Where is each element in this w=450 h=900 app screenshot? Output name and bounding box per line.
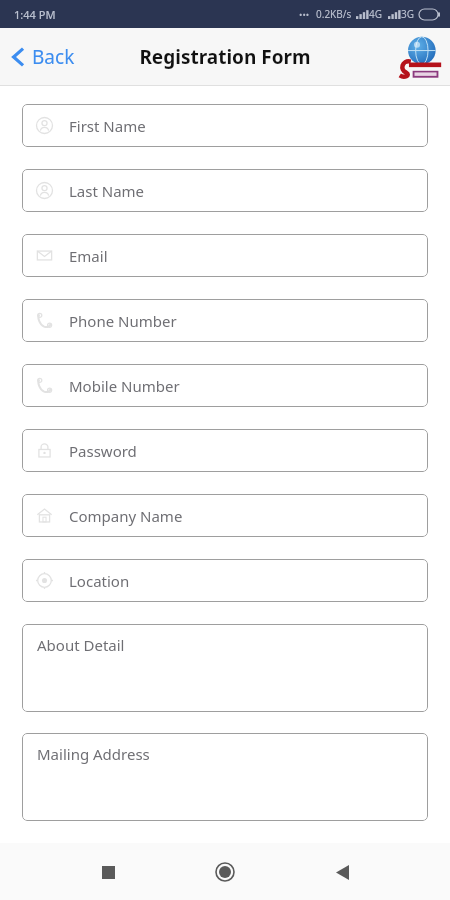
button[interactable]: About Detail — [22, 624, 428, 712]
button[interactable]: Phone Number — [22, 299, 428, 342]
button[interactable]: Home — [205, 852, 245, 892]
staticText: 4G — [369, 7, 382, 21]
staticText: ••• — [299, 8, 310, 20]
staticText: Password — [69, 441, 137, 461]
button[interactable]: Mailing Address — [22, 733, 428, 821]
staticText: Company Name — [69, 506, 183, 526]
button[interactable]: Mobile Number — [22, 364, 428, 407]
button[interactable]: Recent apps — [88, 852, 128, 892]
button[interactable]: Company Name — [22, 494, 428, 537]
staticText: Registration Form — [139, 44, 311, 70]
button[interactable]: Email — [22, 234, 428, 277]
staticText: 0.2KB/s — [316, 7, 352, 21]
staticText: About Detail — [37, 635, 125, 655]
button[interactable]: Shanky Global logo — [397, 34, 443, 80]
staticText: Location — [69, 571, 130, 591]
staticText: 3G — [401, 7, 414, 21]
staticText: Email — [69, 246, 108, 266]
staticText: Phone Number — [69, 311, 177, 331]
button[interactable]: Back — [322, 852, 362, 892]
staticText: Last Name — [69, 181, 145, 201]
button[interactable]: Back — [0, 36, 87, 78]
staticText: Mailing Address — [37, 744, 150, 764]
staticText: 1:44 PM — [14, 7, 56, 22]
button[interactable]: Location — [22, 559, 428, 602]
staticText: Back — [32, 44, 75, 70]
button[interactable]: Last Name — [22, 169, 428, 212]
staticText: Mobile Number — [69, 376, 180, 396]
button[interactable]: First Name — [22, 104, 428, 147]
button[interactable]: Password — [22, 429, 428, 472]
staticText: First Name — [69, 116, 146, 136]
